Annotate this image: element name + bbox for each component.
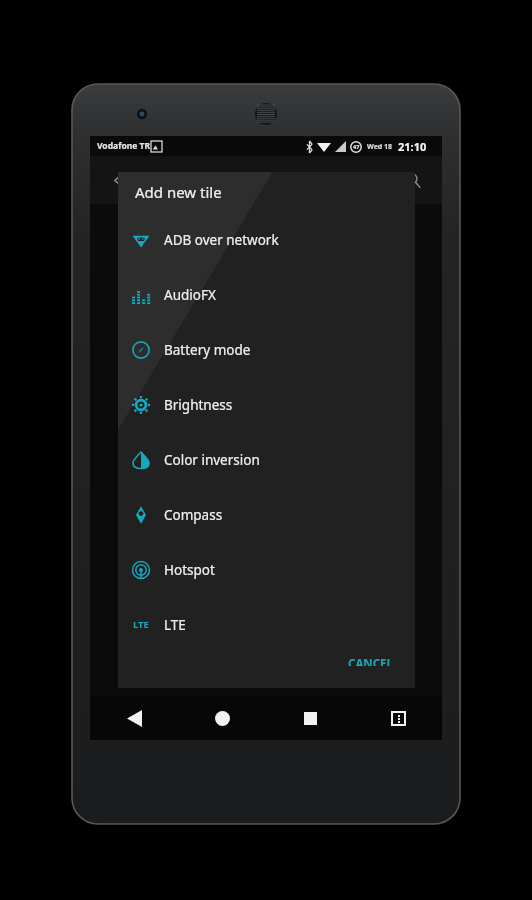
staticText: AudioFX xyxy=(164,286,216,304)
button[interactable]: Recent apps xyxy=(266,696,354,740)
staticText: Hotspot xyxy=(164,561,215,579)
button[interactable]: ADB over network xyxy=(118,212,415,267)
button[interactable]: Hotspot xyxy=(118,542,415,597)
staticText: Brightness xyxy=(164,396,233,414)
staticText: Compass xyxy=(164,506,223,524)
button[interactable]: Home xyxy=(178,696,266,740)
button[interactable]: Back xyxy=(104,166,132,194)
button[interactable]: LTE xyxy=(118,597,415,652)
staticText: ADB over network xyxy=(164,231,279,249)
staticText: 21:10 xyxy=(398,139,427,154)
button[interactable]: CANCEL xyxy=(342,652,399,670)
button[interactable]: Search xyxy=(398,165,428,195)
button[interactable]: Brightness xyxy=(118,377,415,432)
staticText: Wed 18 xyxy=(367,142,393,152)
button[interactable]: AudioFX xyxy=(118,267,415,322)
button[interactable]: Color inversion xyxy=(118,432,415,487)
staticText: Add new tile xyxy=(135,182,222,202)
button[interactable]: Back xyxy=(90,696,178,740)
staticText: Vodafone TR xyxy=(97,140,151,152)
staticText: LTE xyxy=(164,616,186,634)
staticText: Battery mode xyxy=(164,341,251,359)
button[interactable]: Menu xyxy=(354,696,442,740)
staticText: LTE xyxy=(133,618,149,631)
staticText: Color inversion xyxy=(164,451,260,469)
button[interactable]: Battery mode xyxy=(118,322,415,377)
staticText: CANCEL xyxy=(348,656,393,666)
staticText: 47 xyxy=(353,143,360,150)
button[interactable]: Compass xyxy=(118,487,415,542)
